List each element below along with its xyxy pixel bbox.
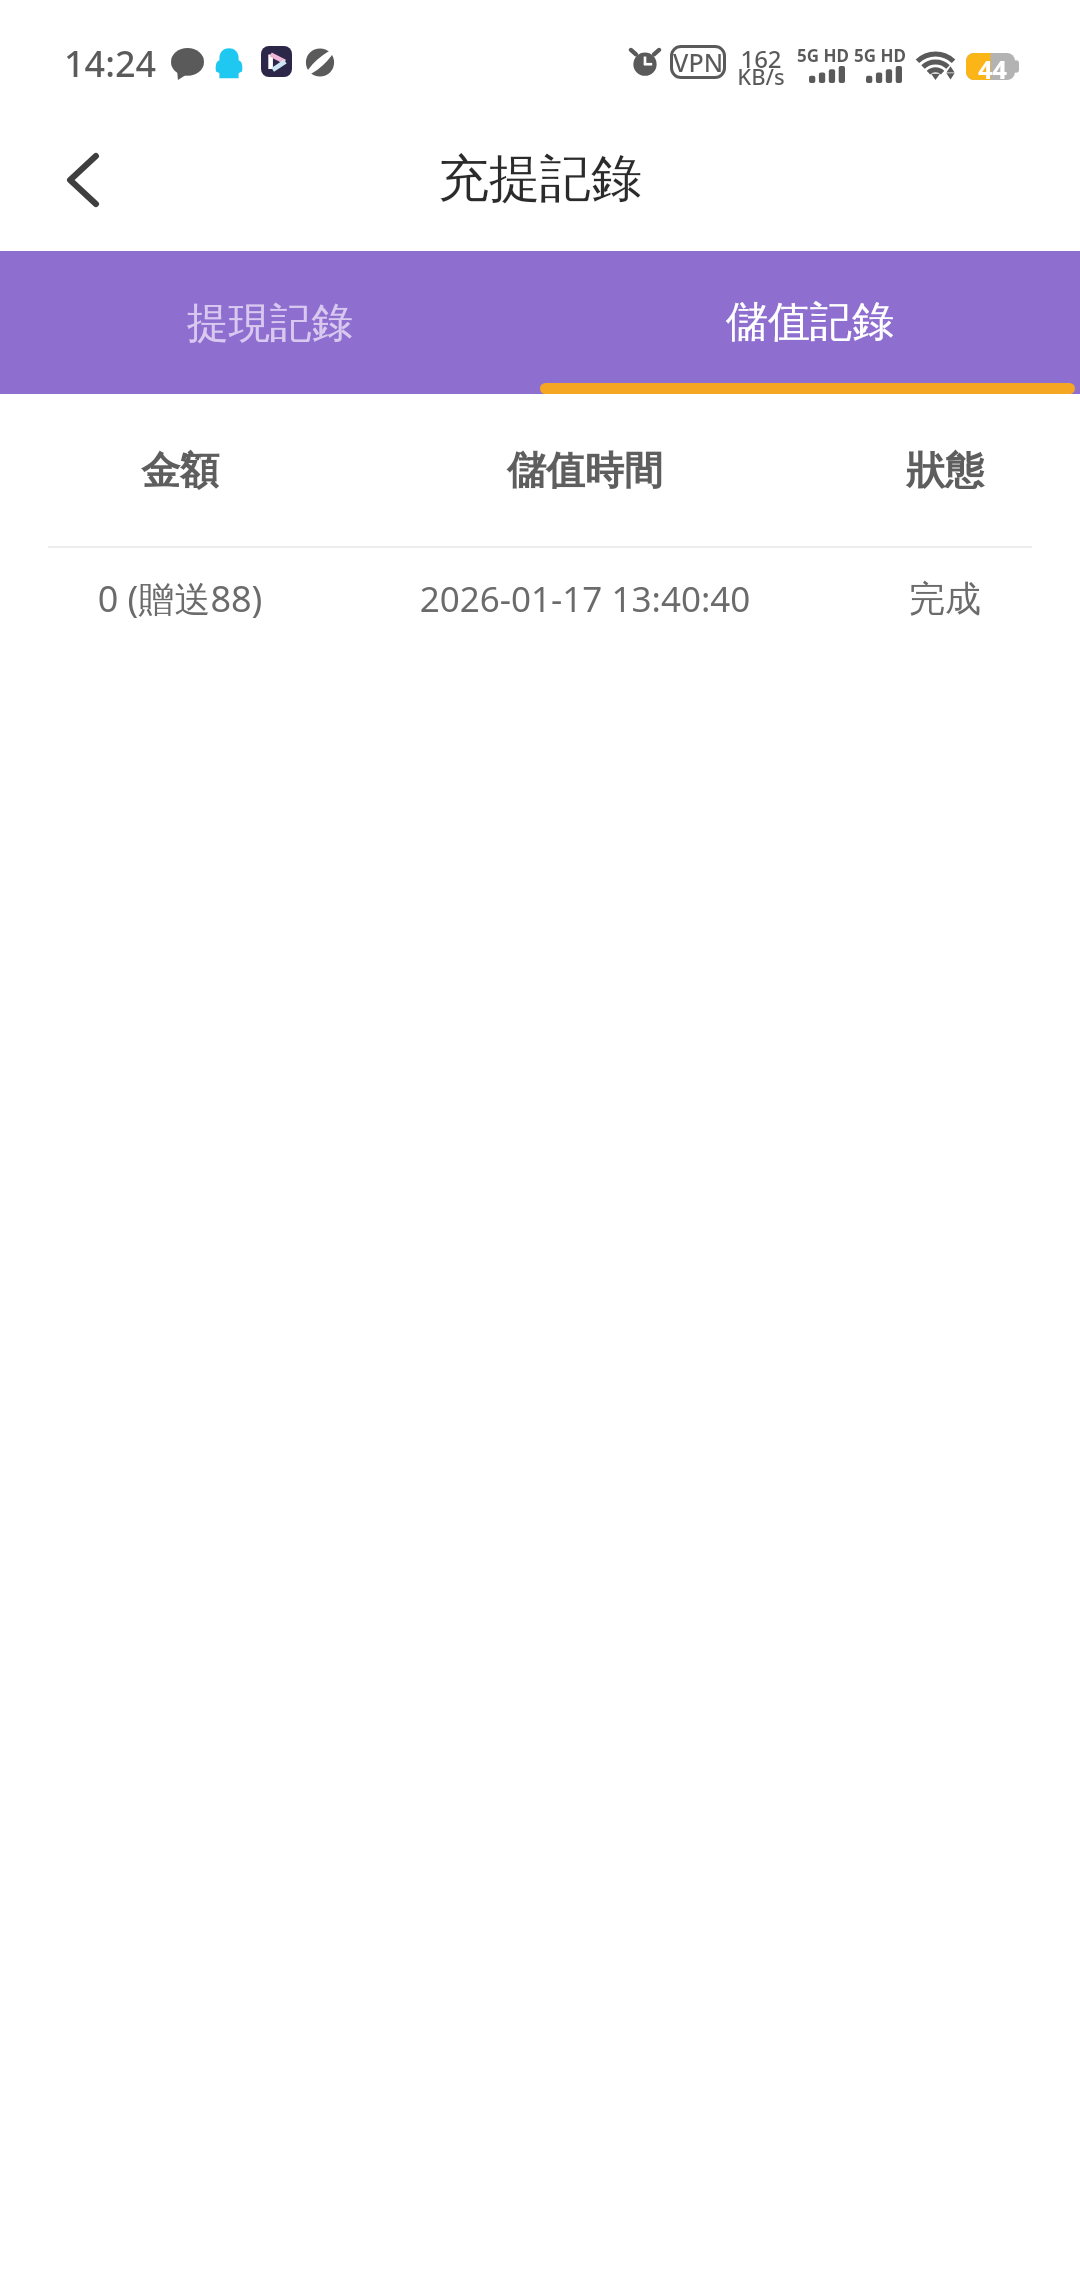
staticText: 儲值記錄 <box>726 296 894 349</box>
staticText: 2026-01-17 13:40:40 <box>360 575 810 623</box>
staticText: 44 <box>968 52 1017 79</box>
staticText: 狀態 <box>810 446 1080 495</box>
staticText: 0 (贈送88) <box>0 574 360 623</box>
staticText: 充提記錄 <box>438 147 642 211</box>
staticText: 提現記錄 <box>187 297 353 349</box>
staticText: VPN <box>673 45 724 79</box>
staticText: 完成 <box>810 576 1080 621</box>
button[interactable]: 提現記錄 <box>0 251 540 394</box>
staticText: 5G HD <box>854 44 906 67</box>
staticText: KB/s <box>733 61 789 91</box>
button[interactable]: 0 (贈送88) <box>0 548 1080 649</box>
button[interactable]: 儲值記錄 <box>540 251 1080 394</box>
staticText: 14:24 <box>64 39 157 88</box>
button[interactable]: Back <box>22 119 144 241</box>
staticText: 162 <box>733 42 789 75</box>
staticText: 金額 <box>0 446 360 495</box>
staticText: 5G HD <box>797 44 849 67</box>
staticText: 儲值時間 <box>360 446 810 495</box>
